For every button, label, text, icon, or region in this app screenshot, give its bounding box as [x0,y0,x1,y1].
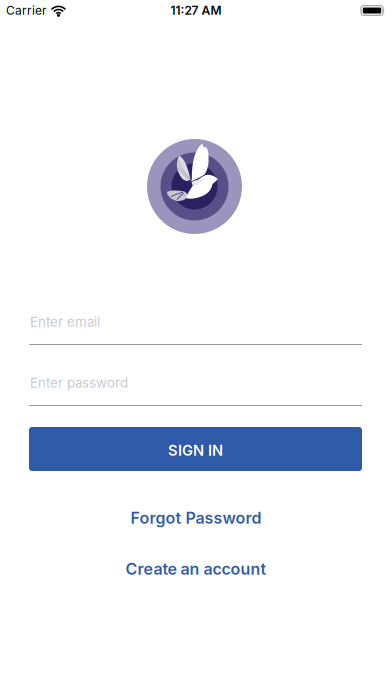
staticText: Enter password [30,375,128,391]
staticText: 11:27 AM [170,3,221,18]
button[interactable]: SIGN IN [29,427,362,471]
staticText: Create an account [125,560,266,578]
button[interactable]: Enter email [29,314,362,345]
button[interactable]: Create an account [125,560,266,578]
staticText: Forgot Password [130,509,261,527]
staticText: Enter email [30,314,100,330]
staticText: Carrier [6,3,47,18]
button[interactable]: Forgot Password [130,509,261,527]
staticText: SIGN IN [168,442,223,459]
button[interactable]: Enter password [29,375,362,406]
